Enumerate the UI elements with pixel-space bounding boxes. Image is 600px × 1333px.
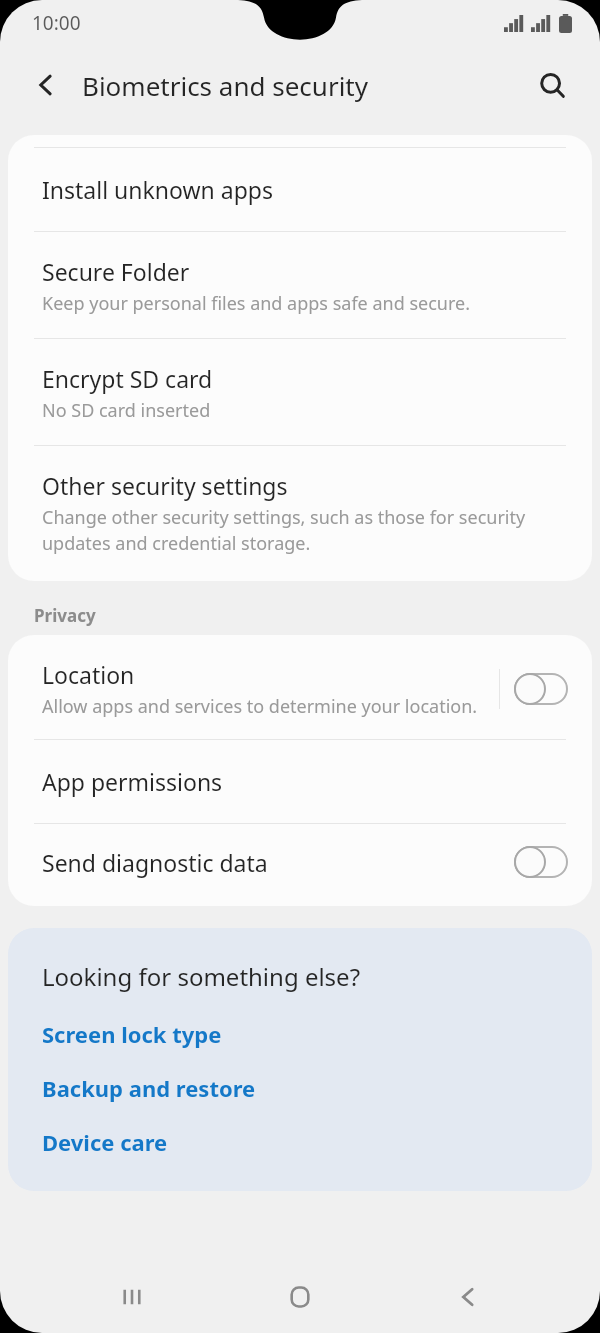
staticText: Screen lock type <box>42 1019 222 1049</box>
staticText: Looking for something else? <box>42 960 361 993</box>
staticText: Secure Folder <box>42 256 190 287</box>
button[interactable]: Search <box>528 61 576 109</box>
button[interactable]: Install unknown apps <box>8 148 592 231</box>
button[interactable]: Send diagnostic data <box>8 824 592 900</box>
staticText: 10:00 <box>32 10 81 36</box>
button[interactable]: Location <box>8 635 592 739</box>
staticText: Allow apps and services to determine you… <box>42 694 478 719</box>
staticText: Install unknown apps <box>42 174 273 205</box>
button[interactable]: Device care <box>42 1127 168 1157</box>
button[interactable]: Secure Folder <box>8 232 592 338</box>
button[interactable]: Recents <box>96 1261 168 1333</box>
button[interactable]: Back <box>432 1261 504 1333</box>
staticText: Backup and restore <box>42 1073 256 1103</box>
button[interactable]: Send diagnostic data toggle <box>514 846 568 878</box>
staticText: Send diagnostic data <box>42 847 514 878</box>
staticText: Encrypt SD card <box>42 363 213 394</box>
button[interactable]: Location toggle <box>500 667 570 711</box>
button[interactable]: Encrypt SD card <box>8 339 592 445</box>
staticText: Keep your personal files and apps safe a… <box>42 291 470 316</box>
staticText: Device care <box>42 1127 168 1157</box>
button[interactable]: Back <box>22 61 70 109</box>
staticText: Location <box>42 659 135 690</box>
staticText: Other security settings <box>42 470 288 501</box>
staticText: Change other security settings, such as … <box>42 505 562 555</box>
staticText: Privacy <box>34 604 96 627</box>
button[interactable]: Home <box>264 1261 336 1333</box>
button[interactable]: Other security settings <box>8 446 592 581</box>
staticText: No SD card inserted <box>42 398 211 423</box>
button[interactable]: Screen lock type <box>42 1019 222 1049</box>
button[interactable]: App permissions <box>8 740 592 823</box>
button[interactable]: Backup and restore <box>42 1073 256 1103</box>
staticText: App permissions <box>42 766 223 797</box>
staticText: Biometrics and security <box>82 68 369 103</box>
